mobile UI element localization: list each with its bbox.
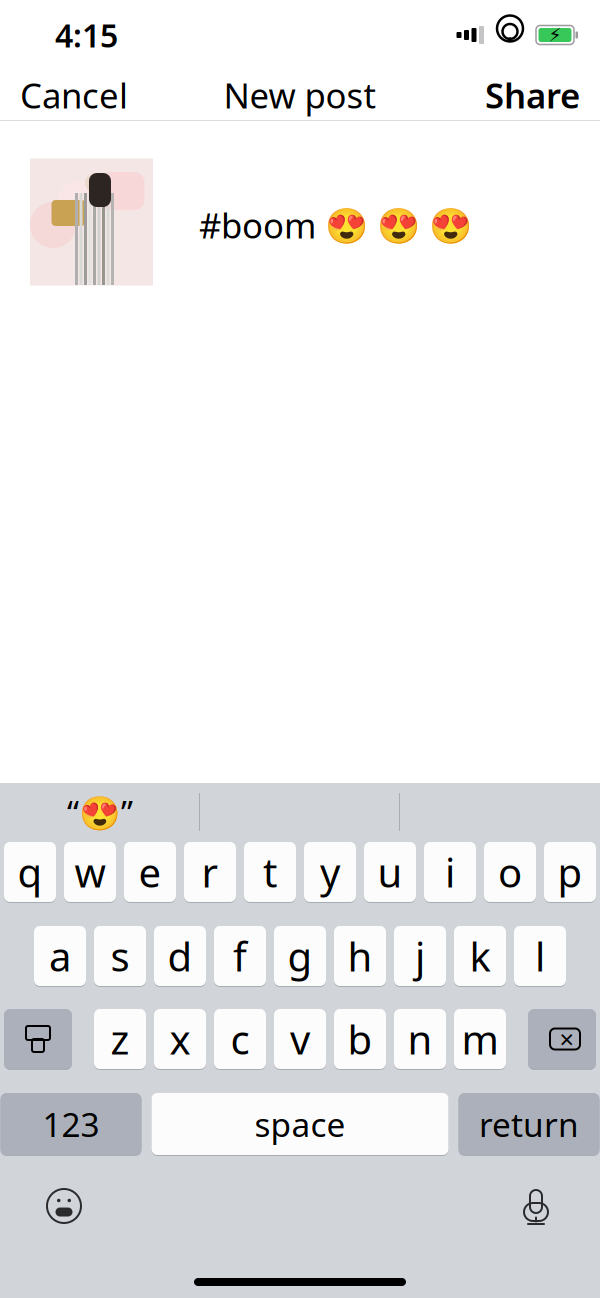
button[interactable]: Share [465,60,600,130]
staticText: w [74,845,105,898]
staticText: New post [223,72,376,118]
staticText: z [110,1012,129,1065]
button[interactable]: Numbers [0,1092,141,1156]
staticText: “😍” [67,790,133,834]
button[interactable]: f [214,925,266,987]
button[interactable]: q [4,841,56,903]
button[interactable]: g [274,925,326,987]
staticText: × [559,1022,573,1056]
staticText: 4:15 [55,14,118,56]
button[interactable]: Dictation [504,1180,568,1232]
button[interactable]: x [154,1008,206,1070]
staticText: #boom 😍 😍 😍 [199,202,472,248]
button[interactable]: space [151,1092,448,1156]
staticText: g [287,929,312,982]
staticText: u [377,845,402,898]
staticText: e [138,845,161,898]
staticText: m [461,1012,498,1065]
button[interactable]: r [184,841,236,903]
button[interactable]: c [214,1008,266,1070]
button[interactable]: Return [458,1092,599,1156]
staticText: t [263,845,277,898]
button[interactable]: l [514,925,566,987]
button[interactable]: a [34,925,86,987]
staticText: Cancel [20,72,128,118]
button[interactable]: “😍” [0,784,200,839]
staticText: v [290,1012,310,1065]
button[interactable]: v [274,1008,326,1070]
button[interactable]: h [334,925,386,987]
staticText: c [230,1012,249,1065]
button[interactable]: u [364,841,416,903]
button[interactable]: Shift [4,1008,72,1070]
staticText: h [347,929,372,982]
button[interactable]: p [544,841,596,903]
staticText: j [415,929,425,982]
staticText: o [498,845,522,898]
button[interactable]: o [484,841,536,903]
button[interactable]: w [64,841,116,903]
button[interactable]: k [454,925,506,987]
button[interactable]: Delete [528,1008,596,1070]
staticText: y [320,845,340,898]
staticText: d [167,929,192,982]
button[interactable]: t [244,841,296,903]
button[interactable]: z [94,1008,146,1070]
button[interactable]: e [124,841,176,903]
button[interactable]: Emoji keyboard [32,1180,96,1232]
staticText: ⚡︎ [548,24,561,46]
staticText: p [557,845,582,898]
staticText: k [469,929,490,982]
staticText: return [479,1102,579,1146]
staticText: i [445,845,455,898]
staticText: a [49,929,71,982]
staticText: b [347,1012,372,1065]
button[interactable]: m [454,1008,506,1070]
button[interactable]: b [334,1008,386,1070]
staticText: q [17,845,42,898]
button[interactable]: n [394,1008,446,1070]
staticText: 123 [42,1102,99,1146]
staticText: space [254,1102,345,1146]
button[interactable]: Cancel [0,60,148,130]
staticText: n [407,1012,432,1065]
button[interactable]: s [94,925,146,987]
button[interactable]: y [304,841,356,903]
button[interactable]: d [154,925,206,987]
button[interactable]: i [424,841,476,903]
staticText: r [201,845,218,898]
staticText: x [169,1012,190,1065]
staticText: l [535,929,545,982]
button[interactable]: j [394,925,446,987]
staticText: f [233,929,247,982]
staticText: s [110,929,129,982]
staticText: Share [485,72,580,118]
